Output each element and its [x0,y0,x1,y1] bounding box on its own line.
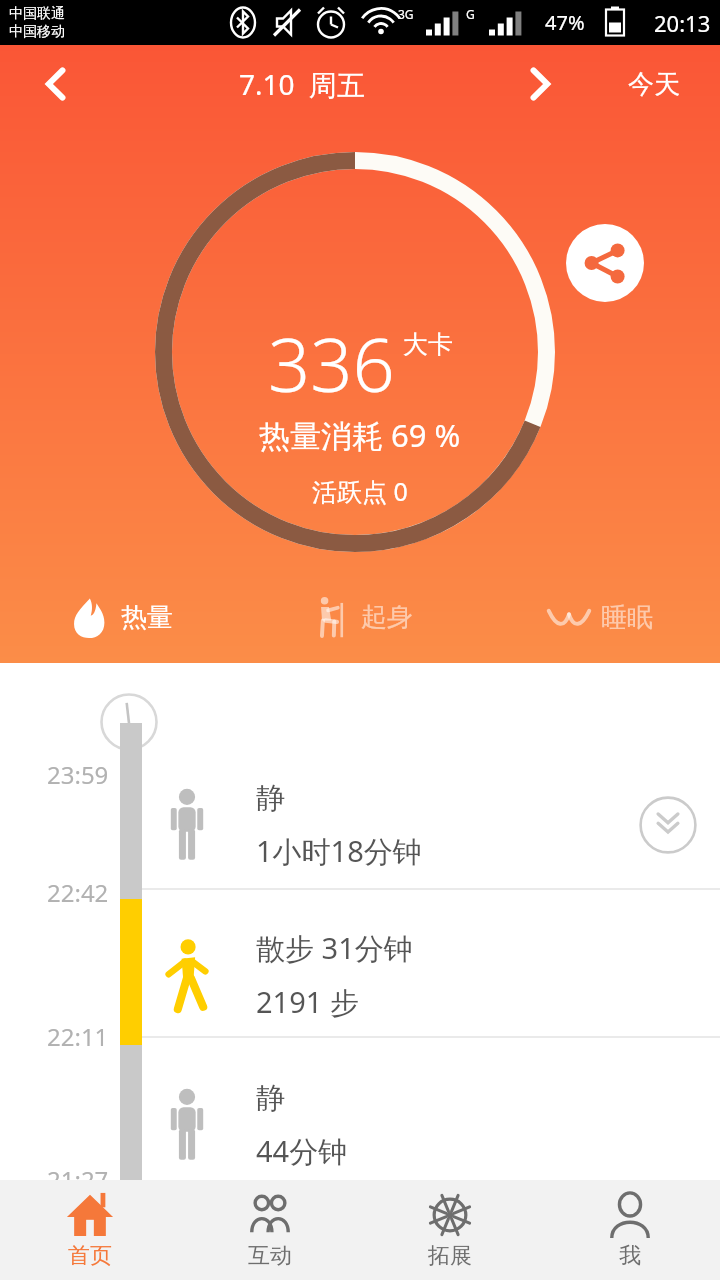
staticText: 22:11 [47,1020,109,1053]
button[interactable]: Expand [636,793,700,857]
staticText: 我 [619,1242,641,1270]
staticText: 23:59 [47,758,109,791]
staticText: 睡眠 [601,601,653,634]
button[interactable]: 首页 [0,1180,180,1280]
staticText: 活跃点 0 [312,474,408,508]
button[interactable]: 今天 [588,45,720,123]
staticText: 21:27 [47,1163,109,1196]
button[interactable]: 睡眠 [480,581,720,653]
button[interactable]: 互动 [180,1180,360,1280]
staticText: 44分钟 [256,1131,348,1171]
staticText: 静 [256,780,285,817]
staticText: 336 [268,313,395,414]
staticText: 今天 [628,68,680,101]
staticText: 热量 [121,601,173,634]
staticText: 3G [398,6,414,22]
staticText: 2191 步 [256,982,359,1022]
button[interactable]: 热量 [0,581,240,653]
staticText: 散步 31分钟 [256,928,413,968]
staticText: 互动 [248,1242,292,1270]
staticText: 中国移动 [9,23,65,41]
staticText: G [466,6,475,22]
button[interactable]: 静 [160,761,700,889]
staticText: 起身 [361,601,413,634]
button[interactable]: Next day [492,45,588,123]
button[interactable]: 我 [540,1180,720,1280]
staticText: 静 [256,1080,285,1117]
staticText: 大卡 [403,329,453,360]
button[interactable]: 散步 31分钟 [160,911,700,1039]
button[interactable]: 起身 [240,581,480,653]
staticText: 拓展 [428,1242,472,1270]
button[interactable]: 7.10 周五 [112,45,492,123]
button[interactable]: 静 [160,1061,700,1189]
staticText: 1小时18分钟 [256,831,422,871]
button[interactable]: Previous day [0,45,112,123]
button[interactable]: Share [566,224,644,302]
staticText: 20:13 [654,8,711,38]
staticText: 7.10 周五 [239,65,366,103]
staticText: 22:42 [47,876,109,909]
staticText: 热量消耗 69 % [259,414,461,456]
staticText: 首页 [68,1242,112,1270]
staticText: 中国联通 [9,5,65,23]
staticText: 47% [545,9,585,36]
button[interactable]: 拓展 [360,1180,540,1280]
